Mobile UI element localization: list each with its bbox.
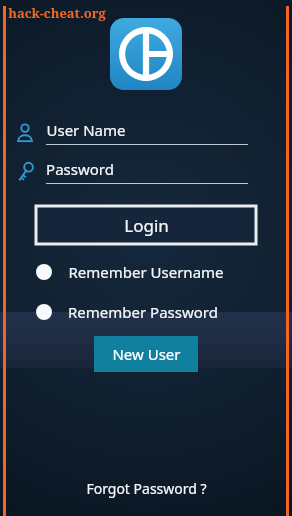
staticText: hack-cheat.org bbox=[8, 4, 106, 22]
staticText: Login bbox=[124, 214, 169, 237]
staticText: Password bbox=[46, 159, 114, 179]
button[interactable]: Remember Username bbox=[36, 262, 272, 282]
staticText: New User bbox=[112, 344, 181, 364]
button[interactable]: Forgot Password ? bbox=[86, 479, 207, 498]
staticText: Remember Password bbox=[68, 302, 218, 322]
button[interactable]: Password bbox=[14, 159, 248, 184]
button[interactable]: App logo bbox=[110, 18, 182, 90]
staticText: Remember Username bbox=[68, 262, 224, 282]
button[interactable]: User Name bbox=[14, 120, 248, 145]
button[interactable]: Remember Password bbox=[36, 302, 272, 322]
staticText: User Name bbox=[46, 120, 126, 140]
button[interactable]: New User bbox=[94, 336, 198, 372]
staticText: Forgot Password ? bbox=[86, 479, 207, 498]
button[interactable]: Login bbox=[36, 206, 256, 244]
